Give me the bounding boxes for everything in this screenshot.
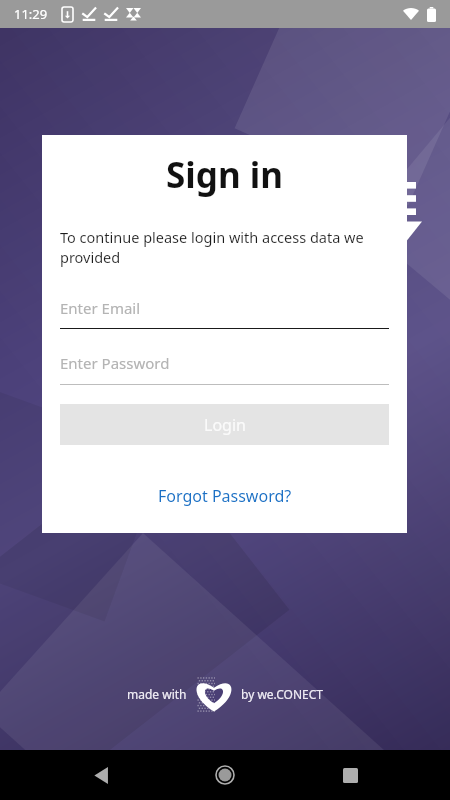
staticText: by we.CONECT: [241, 686, 323, 702]
button[interactable]: Back: [77, 751, 125, 799]
staticText: Enter Email: [60, 298, 141, 318]
staticText: Sign in: [60, 151, 389, 199]
staticText: To continue please login with access dat…: [60, 227, 389, 267]
staticText: Login: [204, 414, 246, 436]
button[interactable]: Forgot Password?: [150, 481, 300, 511]
staticText: Forgot Password?: [158, 485, 292, 507]
button[interactable]: Home: [201, 751, 249, 799]
button[interactable]: Recent apps: [326, 751, 374, 799]
button[interactable]: Enter Email: [60, 298, 389, 329]
staticText: made with: [127, 686, 187, 702]
staticText: WE.CONECT: [86, 378, 364, 441]
staticText: 11:29: [14, 5, 48, 23]
button[interactable]: Enter Password: [60, 353, 389, 385]
staticText: Enter Password: [60, 353, 170, 373]
